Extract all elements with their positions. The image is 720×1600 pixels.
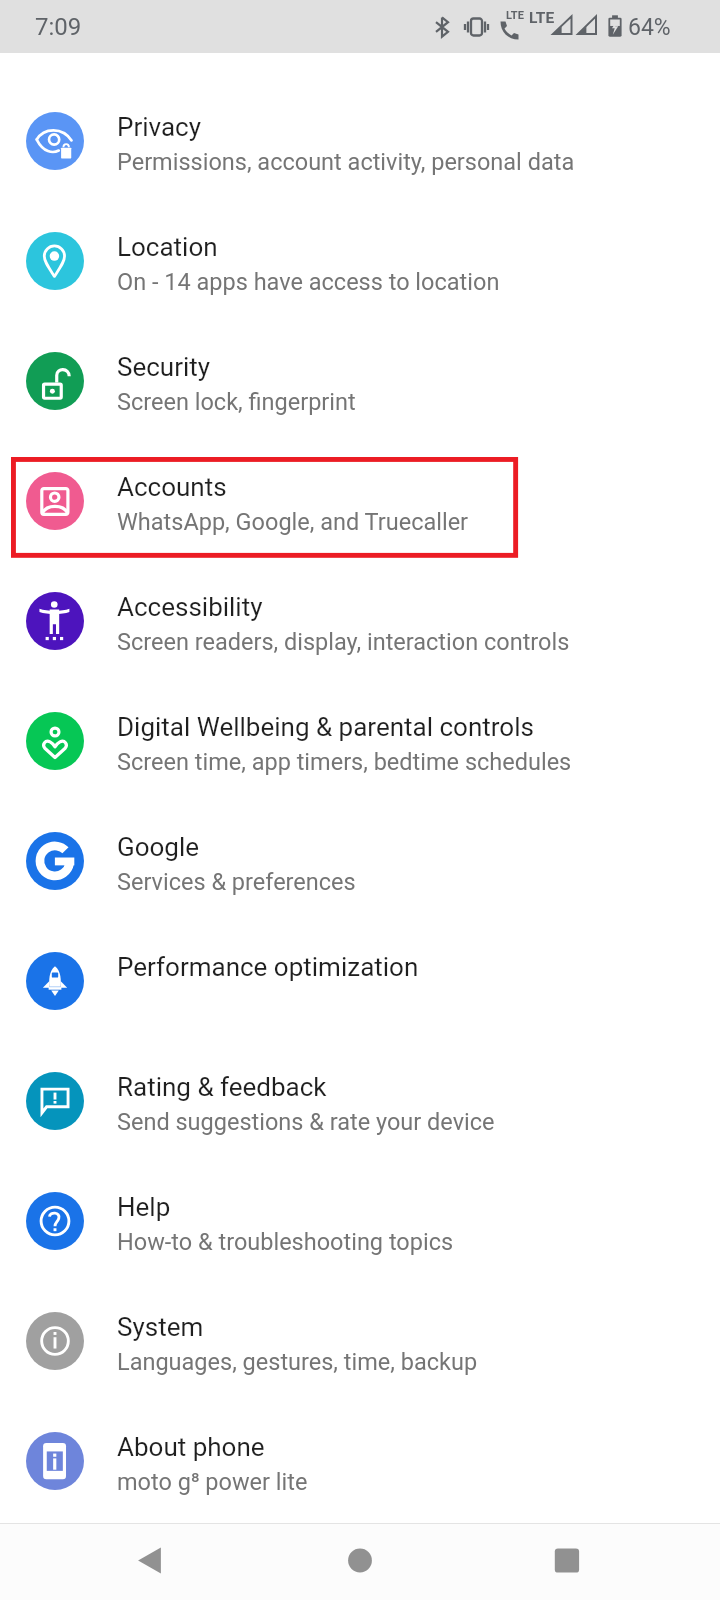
button[interactable]: Rating & feedback — [0, 1041, 720, 1161]
staticText: System — [117, 1312, 204, 1342]
button[interactable]: About phone — [0, 1401, 720, 1521]
staticText: Languages, gestures, time, backup — [117, 1348, 478, 1376]
staticText: On - 14 apps have access to location — [117, 268, 500, 296]
staticText: LTE — [529, 9, 555, 27]
staticText: Send suggestions & rate your device — [117, 1108, 495, 1136]
staticText: Accounts — [117, 472, 227, 502]
staticText: Google — [117, 832, 200, 862]
staticText: Screen lock, fingerprint — [117, 388, 356, 416]
button[interactable]: System — [0, 1281, 720, 1401]
staticText: 7:09 — [35, 13, 82, 41]
staticText: Help — [117, 1192, 171, 1222]
button[interactable]: Digital Wellbeing & parental controls — [0, 681, 720, 801]
staticText: Privacy — [117, 112, 201, 142]
staticText: WhatsApp, Google, and Truecaller — [117, 508, 469, 536]
button[interactable]: Location — [0, 201, 720, 321]
button[interactable]: Performance optimization — [0, 921, 720, 1041]
button[interactable]: Recent apps — [537, 1524, 597, 1600]
staticText: Permissions, account activity, personal … — [117, 148, 575, 176]
staticText: 64% — [628, 14, 671, 41]
staticText: Security — [117, 352, 211, 382]
staticText: Screen readers, display, interaction con… — [117, 628, 570, 656]
staticText: Rating & feedback — [117, 1072, 327, 1102]
button[interactable]: Privacy — [0, 81, 720, 201]
button[interactable]: Accounts — [0, 441, 720, 561]
staticText: Screen time, app timers, bedtime schedul… — [117, 748, 572, 776]
staticText: How-to & troubleshooting topics — [117, 1228, 454, 1256]
staticText: Location — [117, 232, 218, 262]
button[interactable]: Google — [0, 801, 720, 921]
button[interactable]: Security — [0, 321, 720, 441]
button[interactable]: Help — [0, 1161, 720, 1281]
staticText: About phone — [117, 1432, 265, 1462]
button[interactable]: Back — [120, 1524, 180, 1600]
button[interactable]: Accessibility — [0, 561, 720, 681]
staticText: Accessibility — [117, 592, 263, 622]
staticText: LTE — [506, 9, 524, 22]
staticText: moto g⁸ power lite — [117, 1468, 308, 1496]
staticText: Services & preferences — [117, 868, 356, 896]
staticText: Digital Wellbeing & parental controls — [117, 712, 534, 742]
staticText: Performance optimization — [117, 952, 419, 982]
button[interactable]: Home — [330, 1524, 390, 1600]
